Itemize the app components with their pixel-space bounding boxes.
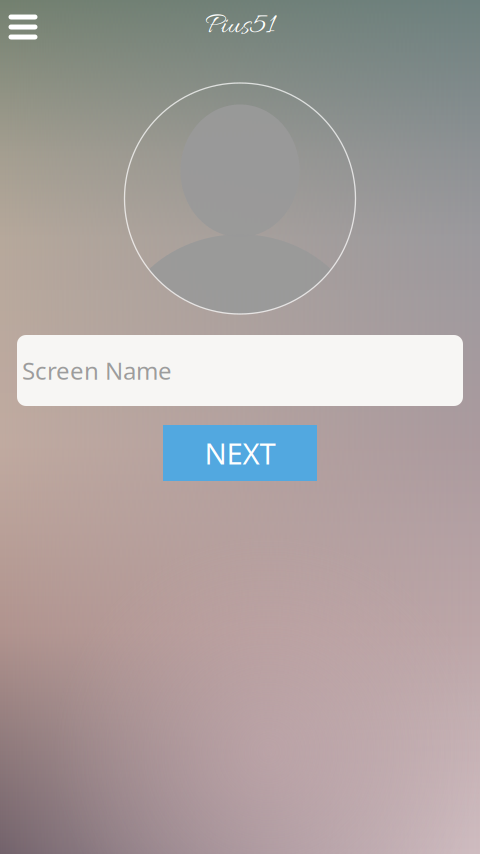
- staticText: NEXT: [204, 433, 275, 472]
- staticText: Pius51: [205, 9, 275, 45]
- staticText: Screen Name: [22, 355, 172, 386]
- button[interactable]: NEXT: [163, 425, 317, 481]
- button[interactable]: Screen Name: [17, 335, 463, 406]
- button[interactable]: Menu: [0, 0, 46, 54]
